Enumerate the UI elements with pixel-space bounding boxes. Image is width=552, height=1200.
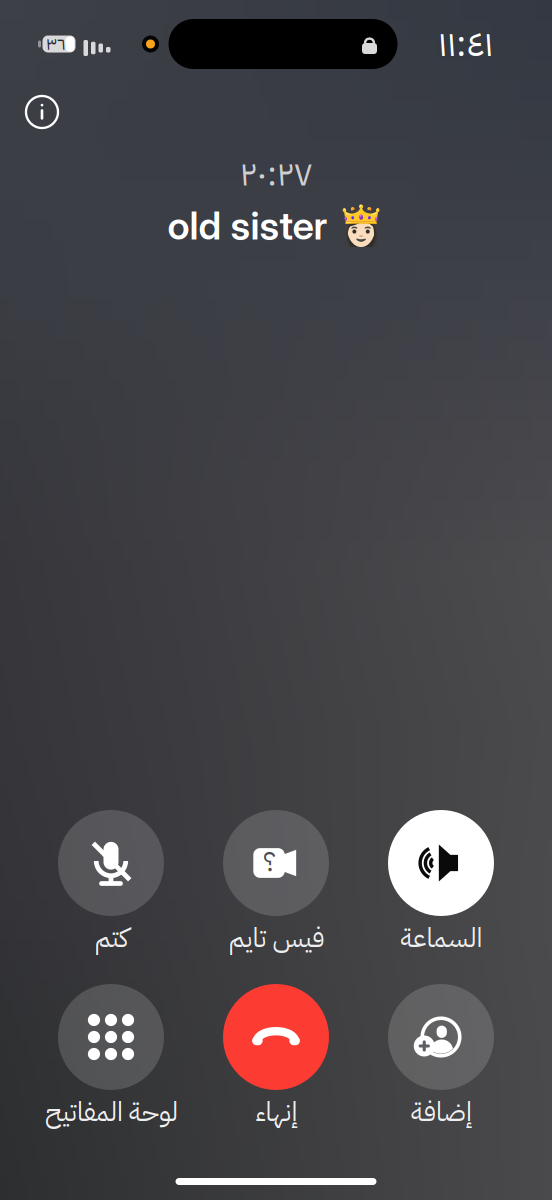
button[interactable]: إضافة [358, 984, 523, 1134]
button[interactable]: لوحة المفاتيح [28, 984, 193, 1134]
staticText: ٢٠:٢٧ [240, 148, 312, 200]
staticText: ١١:٤١ [438, 17, 493, 71]
button[interactable]: كتم [28, 810, 193, 960]
staticText: فيس تايم [228, 918, 324, 958]
button[interactable]: السماعة [358, 810, 523, 960]
staticText: إضافة [410, 1092, 471, 1132]
staticText: لوحة المفاتيح [44, 1092, 177, 1132]
staticText: old sister 👸🏻 [167, 202, 384, 249]
button[interactable]: ؟ [193, 810, 358, 960]
staticText: كتم [94, 918, 128, 958]
button[interactable]: Call details [18, 88, 66, 136]
button[interactable]: إنهاء [193, 984, 358, 1134]
staticText: ٣٦ [46, 31, 66, 57]
staticText: إنهاء [255, 1092, 297, 1132]
staticText: ؟ [262, 842, 275, 882]
staticText: السماعة [400, 918, 482, 958]
